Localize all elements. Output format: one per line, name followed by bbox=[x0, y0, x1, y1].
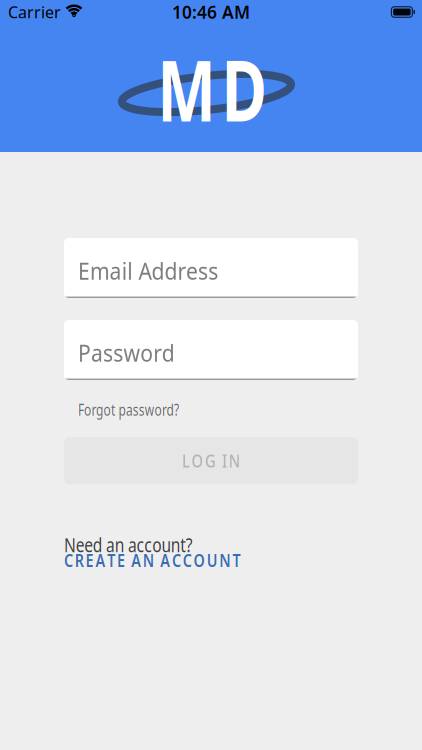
staticText: Forgot password? bbox=[78, 399, 213, 420]
button[interactable]: Email Address bbox=[64, 238, 358, 298]
staticText: Carrier bbox=[8, 1, 61, 23]
button[interactable]: L O G I N bbox=[64, 437, 358, 484]
staticText: C R E A T E A N A C C O U N T bbox=[64, 549, 277, 572]
button[interactable]: C R E A T E A N A C C O U N T bbox=[64, 549, 304, 572]
staticText: Email Address bbox=[78, 256, 229, 286]
staticText: Need an account? bbox=[64, 531, 229, 558]
staticText: M D bbox=[138, 33, 286, 145]
button[interactable]: Forgot password? bbox=[78, 399, 218, 420]
staticText: L O G I N bbox=[177, 449, 245, 472]
staticText: Password bbox=[78, 338, 182, 368]
button[interactable]: Password bbox=[64, 320, 358, 380]
staticText: 10:46 AM bbox=[172, 0, 250, 23]
